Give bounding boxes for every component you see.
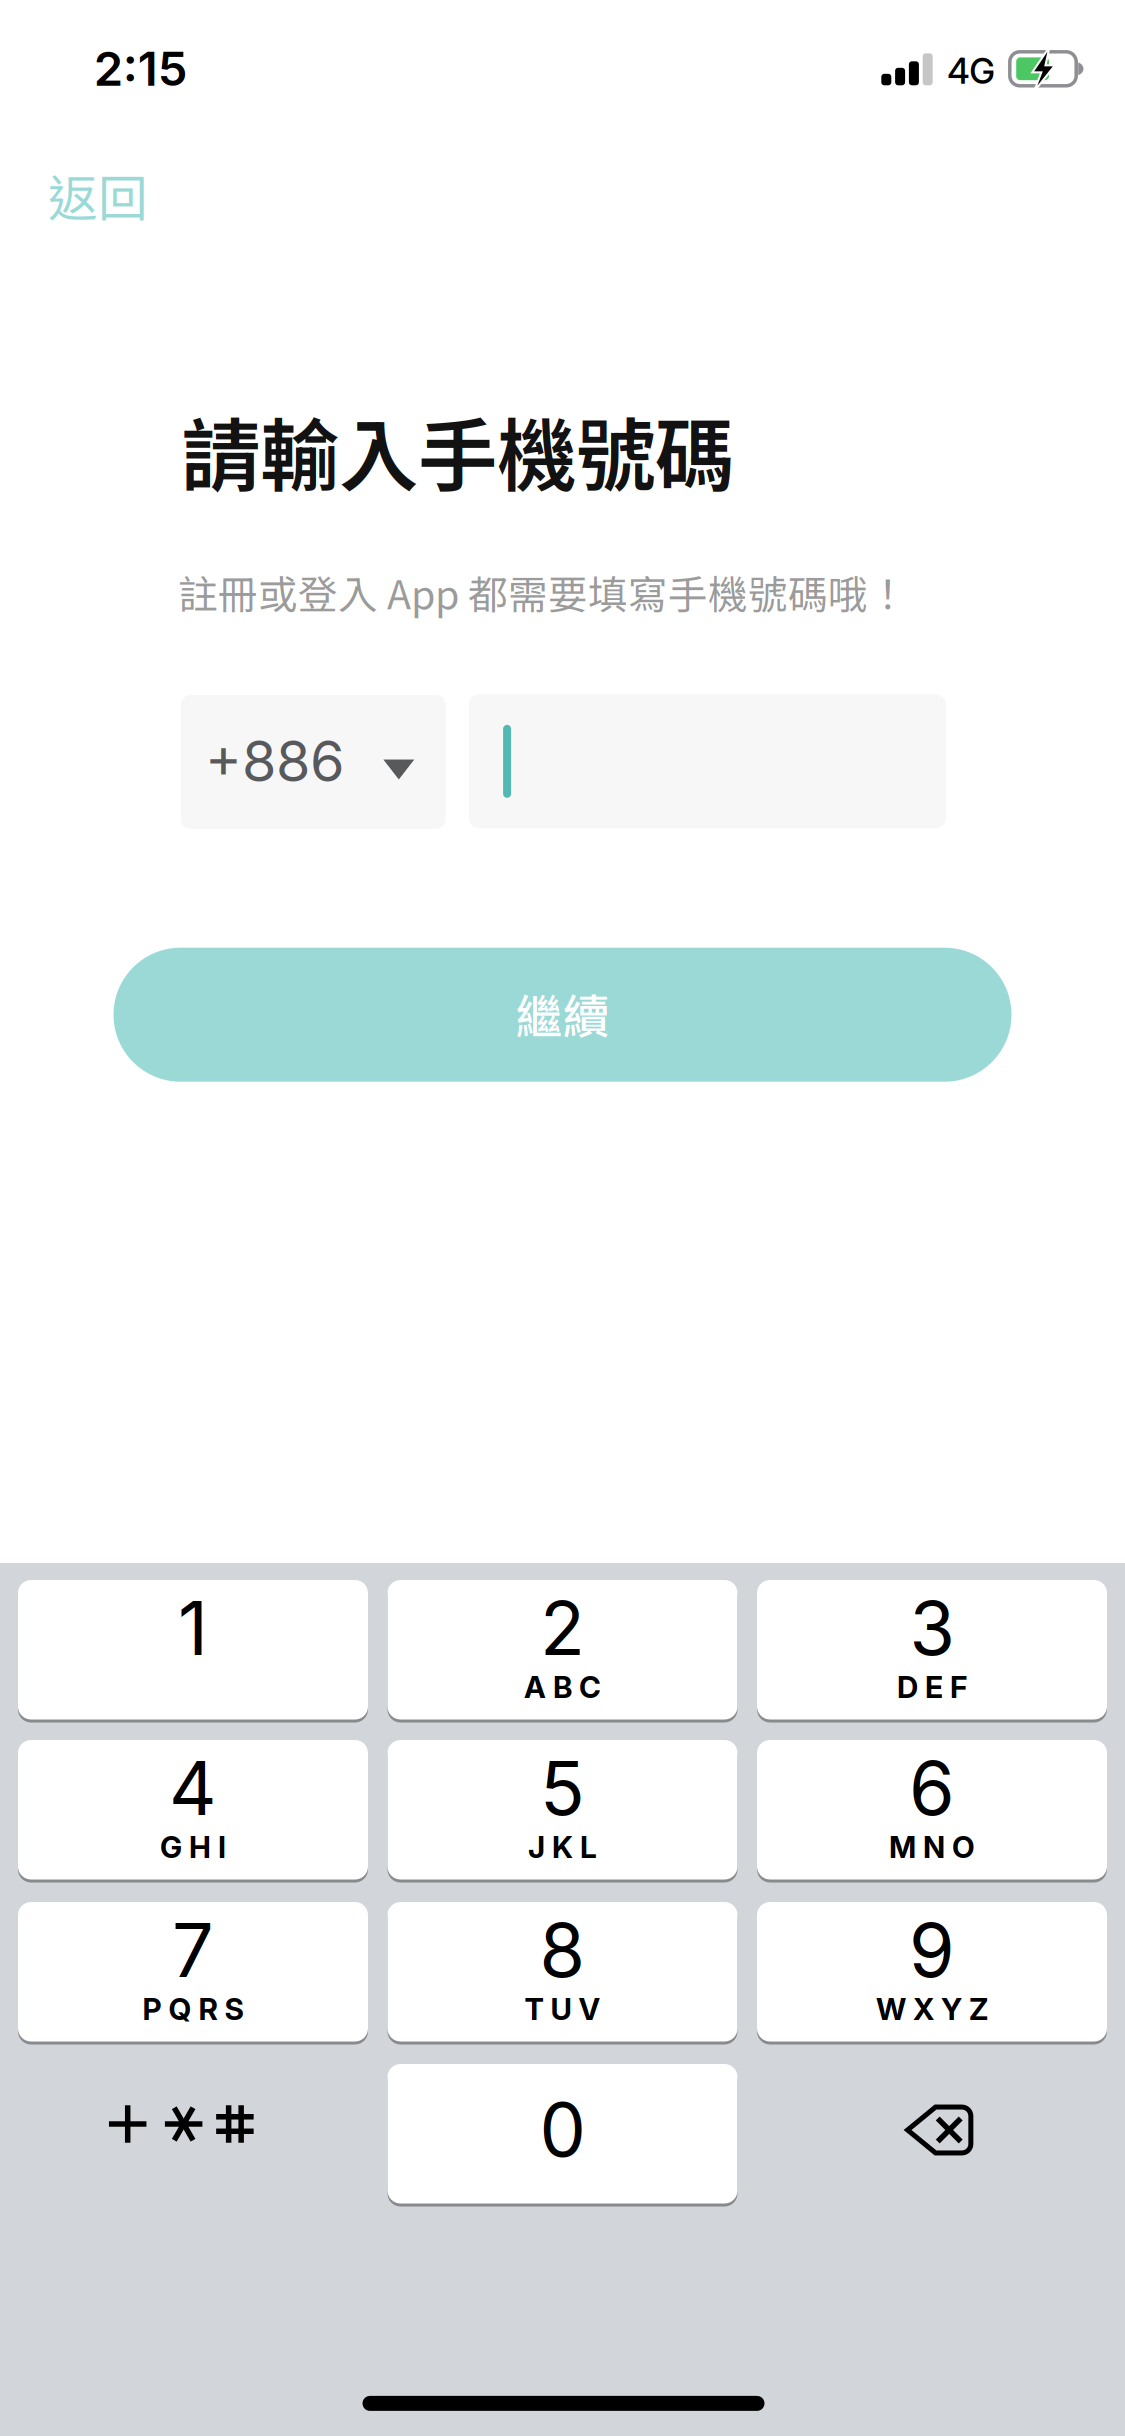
staticText: J K L — [528, 1829, 597, 1865]
staticText: 3 — [909, 1584, 954, 1673]
button[interactable]: 3 — [757, 1580, 1107, 1722]
button[interactable]: 2 — [387, 1580, 737, 1722]
staticText: 9 — [909, 1906, 955, 1995]
staticText: 1 — [178, 1584, 208, 1673]
button[interactable]: 8 — [387, 1902, 737, 2044]
staticText: 0 — [539, 2085, 585, 2174]
staticText: D E F — [897, 1669, 967, 1705]
button[interactable]: Symbols — [18, 2064, 368, 2203]
button[interactable]: 0 — [387, 2064, 737, 2206]
staticText: 8 — [539, 1906, 585, 1995]
staticText: G H I — [160, 1829, 226, 1865]
staticText: P Q R S — [142, 1991, 243, 2027]
staticText: M N O — [889, 1829, 975, 1865]
button[interactable]: 6 — [757, 1740, 1107, 1882]
button[interactable]: 1 — [18, 1580, 368, 1722]
staticText: 2:15 — [94, 40, 188, 97]
staticText: 4 — [169, 1744, 217, 1833]
staticText: A B C — [524, 1669, 601, 1705]
staticText: +886 — [205, 727, 345, 795]
button[interactable]: 9 — [757, 1902, 1107, 2044]
staticText: T U V — [524, 1991, 600, 2027]
staticText: 6 — [909, 1744, 955, 1833]
button[interactable]: 繼續 — [113, 948, 1011, 1082]
button[interactable]: Phone number — [469, 694, 946, 828]
staticText: 2 — [540, 1584, 585, 1673]
staticText: 7 — [172, 1906, 214, 1995]
staticText: 註冊或登入 App 都需要填寫手機號碼哦！ — [178, 563, 908, 621]
button[interactable]: 4 — [18, 1740, 368, 1882]
button[interactable]: 返回 — [48, 147, 208, 243]
staticText: 5 — [540, 1744, 585, 1833]
staticText: 返回 — [48, 159, 148, 231]
staticText: 4G — [947, 50, 995, 92]
staticText: W X Y Z — [876, 1991, 988, 2027]
button[interactable]: 5 — [387, 1740, 737, 1882]
staticText: 繼續 — [516, 980, 610, 1047]
staticText: 請輸入手機號碼 — [181, 393, 734, 508]
button[interactable]: Delete — [757, 2064, 1107, 2203]
button[interactable]: +886 — [181, 695, 446, 829]
button[interactable]: 7 — [18, 1902, 368, 2044]
